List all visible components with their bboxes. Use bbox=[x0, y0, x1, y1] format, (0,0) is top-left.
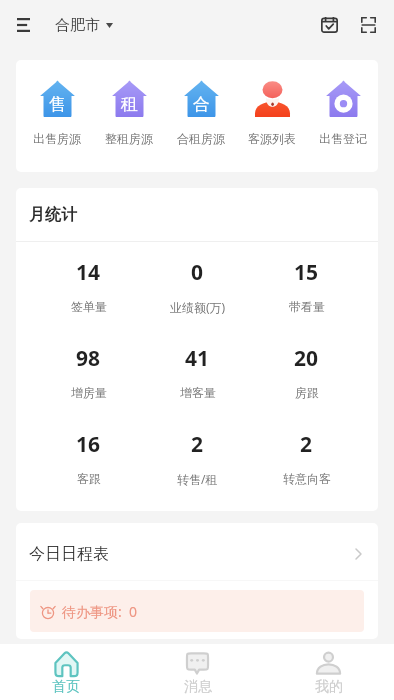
staticText: 20 bbox=[294, 344, 319, 373]
button[interactable]: 售 bbox=[21, 60, 93, 172]
staticText: 客跟 bbox=[77, 471, 101, 486]
button[interactable]: 41 bbox=[143, 344, 252, 414]
staticText: 待办事项: 0 bbox=[62, 602, 138, 621]
button[interactable]: 15 bbox=[252, 258, 361, 328]
staticText: 月统计 bbox=[29, 205, 77, 225]
button[interactable]: Calendar bbox=[310, 3, 349, 47]
staticText: 0 bbox=[191, 258, 204, 287]
staticText: 98 bbox=[76, 344, 101, 373]
button[interactable]: 16 bbox=[34, 430, 143, 500]
staticText: 客源列表 bbox=[248, 131, 296, 146]
button[interactable]: 我的 bbox=[263, 644, 394, 700]
staticText: 出售房源 bbox=[33, 131, 81, 146]
button[interactable]: 14 bbox=[34, 258, 143, 328]
staticText: 2 bbox=[300, 430, 313, 459]
staticText: 消息 bbox=[184, 678, 212, 696]
staticText: 我的 bbox=[315, 678, 343, 696]
staticText: 15 bbox=[294, 258, 319, 287]
staticText: 出售登记 bbox=[319, 131, 367, 146]
button[interactable]: 待办事项: 0 bbox=[30, 590, 364, 632]
button[interactable]: 客源列表 bbox=[236, 60, 307, 172]
staticText: 增客量 bbox=[180, 385, 216, 400]
button[interactable]: 消息 bbox=[132, 644, 263, 700]
staticText: 合租房源 bbox=[177, 131, 225, 146]
button[interactable]: 租 bbox=[93, 60, 165, 172]
button[interactable]: Scan bbox=[349, 3, 388, 47]
button[interactable]: 2 bbox=[143, 430, 252, 500]
staticText: 2 bbox=[191, 430, 204, 459]
button[interactable]: Menu bbox=[0, 0, 46, 50]
button[interactable]: 0 bbox=[143, 258, 252, 328]
button[interactable]: 出售登记 bbox=[307, 60, 378, 172]
staticText: 转售/租 bbox=[177, 471, 218, 487]
staticText: 41 bbox=[185, 344, 210, 373]
staticText: 业绩额(万) bbox=[170, 299, 226, 315]
button[interactable]: 2 bbox=[252, 430, 361, 500]
staticText: 16 bbox=[76, 430, 101, 459]
staticText: 增房量 bbox=[71, 385, 107, 400]
staticText: 整租房源 bbox=[105, 131, 153, 146]
button[interactable]: 合 bbox=[165, 60, 236, 172]
staticText: 签单量 bbox=[71, 299, 107, 314]
button[interactable]: 今日日程表 bbox=[16, 523, 378, 580]
staticText: 售 bbox=[49, 94, 66, 115]
button[interactable]: 合肥市 bbox=[55, 8, 113, 43]
staticText: 房跟 bbox=[295, 385, 319, 400]
staticText: 今日日程表 bbox=[29, 544, 109, 564]
button[interactable]: 首页 bbox=[0, 644, 132, 700]
staticText: 14 bbox=[76, 258, 101, 287]
staticText: 租 bbox=[121, 94, 138, 115]
button[interactable]: 98 bbox=[34, 344, 143, 414]
staticText: 首页 bbox=[52, 678, 80, 696]
button[interactable]: 20 bbox=[252, 344, 361, 414]
staticText: 转意向客 bbox=[283, 471, 331, 486]
staticText: 带看量 bbox=[289, 299, 325, 314]
staticText: 合肥市 bbox=[55, 16, 100, 35]
staticText: 合 bbox=[193, 94, 210, 115]
